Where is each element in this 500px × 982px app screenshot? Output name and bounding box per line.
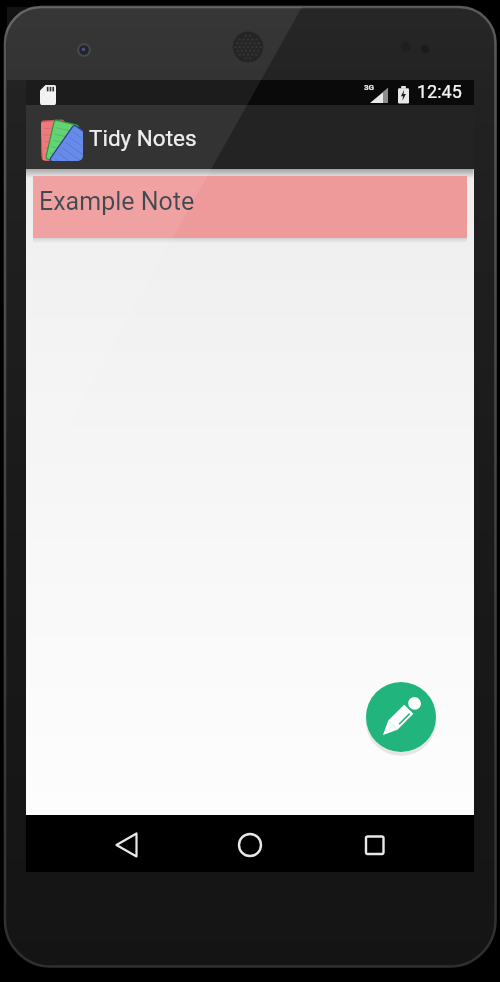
staticText: 12:45 bbox=[417, 81, 462, 102]
button[interactable] bbox=[366, 682, 436, 752]
staticText: Example Note bbox=[39, 187, 195, 216]
staticText: Tidy Notes bbox=[89, 125, 197, 151]
staticText: 3G bbox=[364, 83, 375, 92]
button[interactable] bbox=[351, 821, 399, 869]
button[interactable]: Example Note bbox=[33, 176, 467, 238]
button[interactable] bbox=[103, 821, 151, 869]
button[interactable] bbox=[226, 821, 274, 869]
